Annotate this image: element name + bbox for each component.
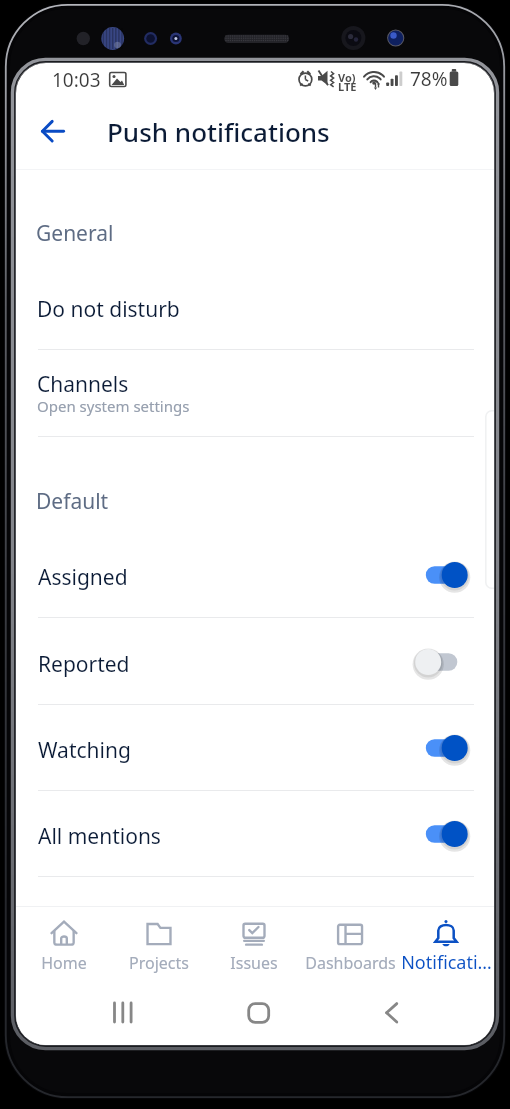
button[interactable] [16, 618, 494, 704]
staticText: All mentions [38, 822, 161, 851]
staticText: General [36, 219, 114, 248]
button[interactable]: Home [225, 986, 291, 1038]
button[interactable] [16, 349, 494, 436]
button[interactable] [16, 262, 494, 349]
staticText: Issues [230, 952, 278, 974]
staticText: Watching [38, 736, 131, 765]
staticText: Projects [129, 952, 189, 974]
staticText: 78% [410, 66, 448, 92]
button[interactable]: Home [16, 907, 111, 979]
button[interactable] [16, 704, 494, 790]
button[interactable]: Back [29, 107, 77, 155]
staticText: Push notifications [107, 114, 330, 149]
button[interactable] [16, 790, 494, 876]
button[interactable]: Dashboards [302, 907, 398, 979]
staticText: Reported [38, 650, 130, 679]
button[interactable]: Notificati… [398, 907, 494, 979]
button[interactable]: Recent apps [90, 986, 156, 1038]
staticText: Notificati… [401, 950, 492, 975]
staticText: Home [41, 952, 87, 974]
staticText: Assigned [38, 563, 128, 592]
staticText: Dashboards [305, 952, 396, 974]
staticText: Channels [37, 370, 129, 399]
staticText: Open system settings [37, 396, 190, 416]
button[interactable]: Issues [206, 907, 302, 979]
staticText: 10:03 [52, 67, 101, 93]
staticText: Default [36, 487, 109, 516]
button[interactable]: Back [358, 986, 424, 1038]
staticText: Do not disturb [37, 295, 180, 324]
button[interactable] [16, 531, 494, 617]
staticText: Vo) LTE [338, 70, 357, 94]
button[interactable]: Projects [111, 907, 206, 979]
